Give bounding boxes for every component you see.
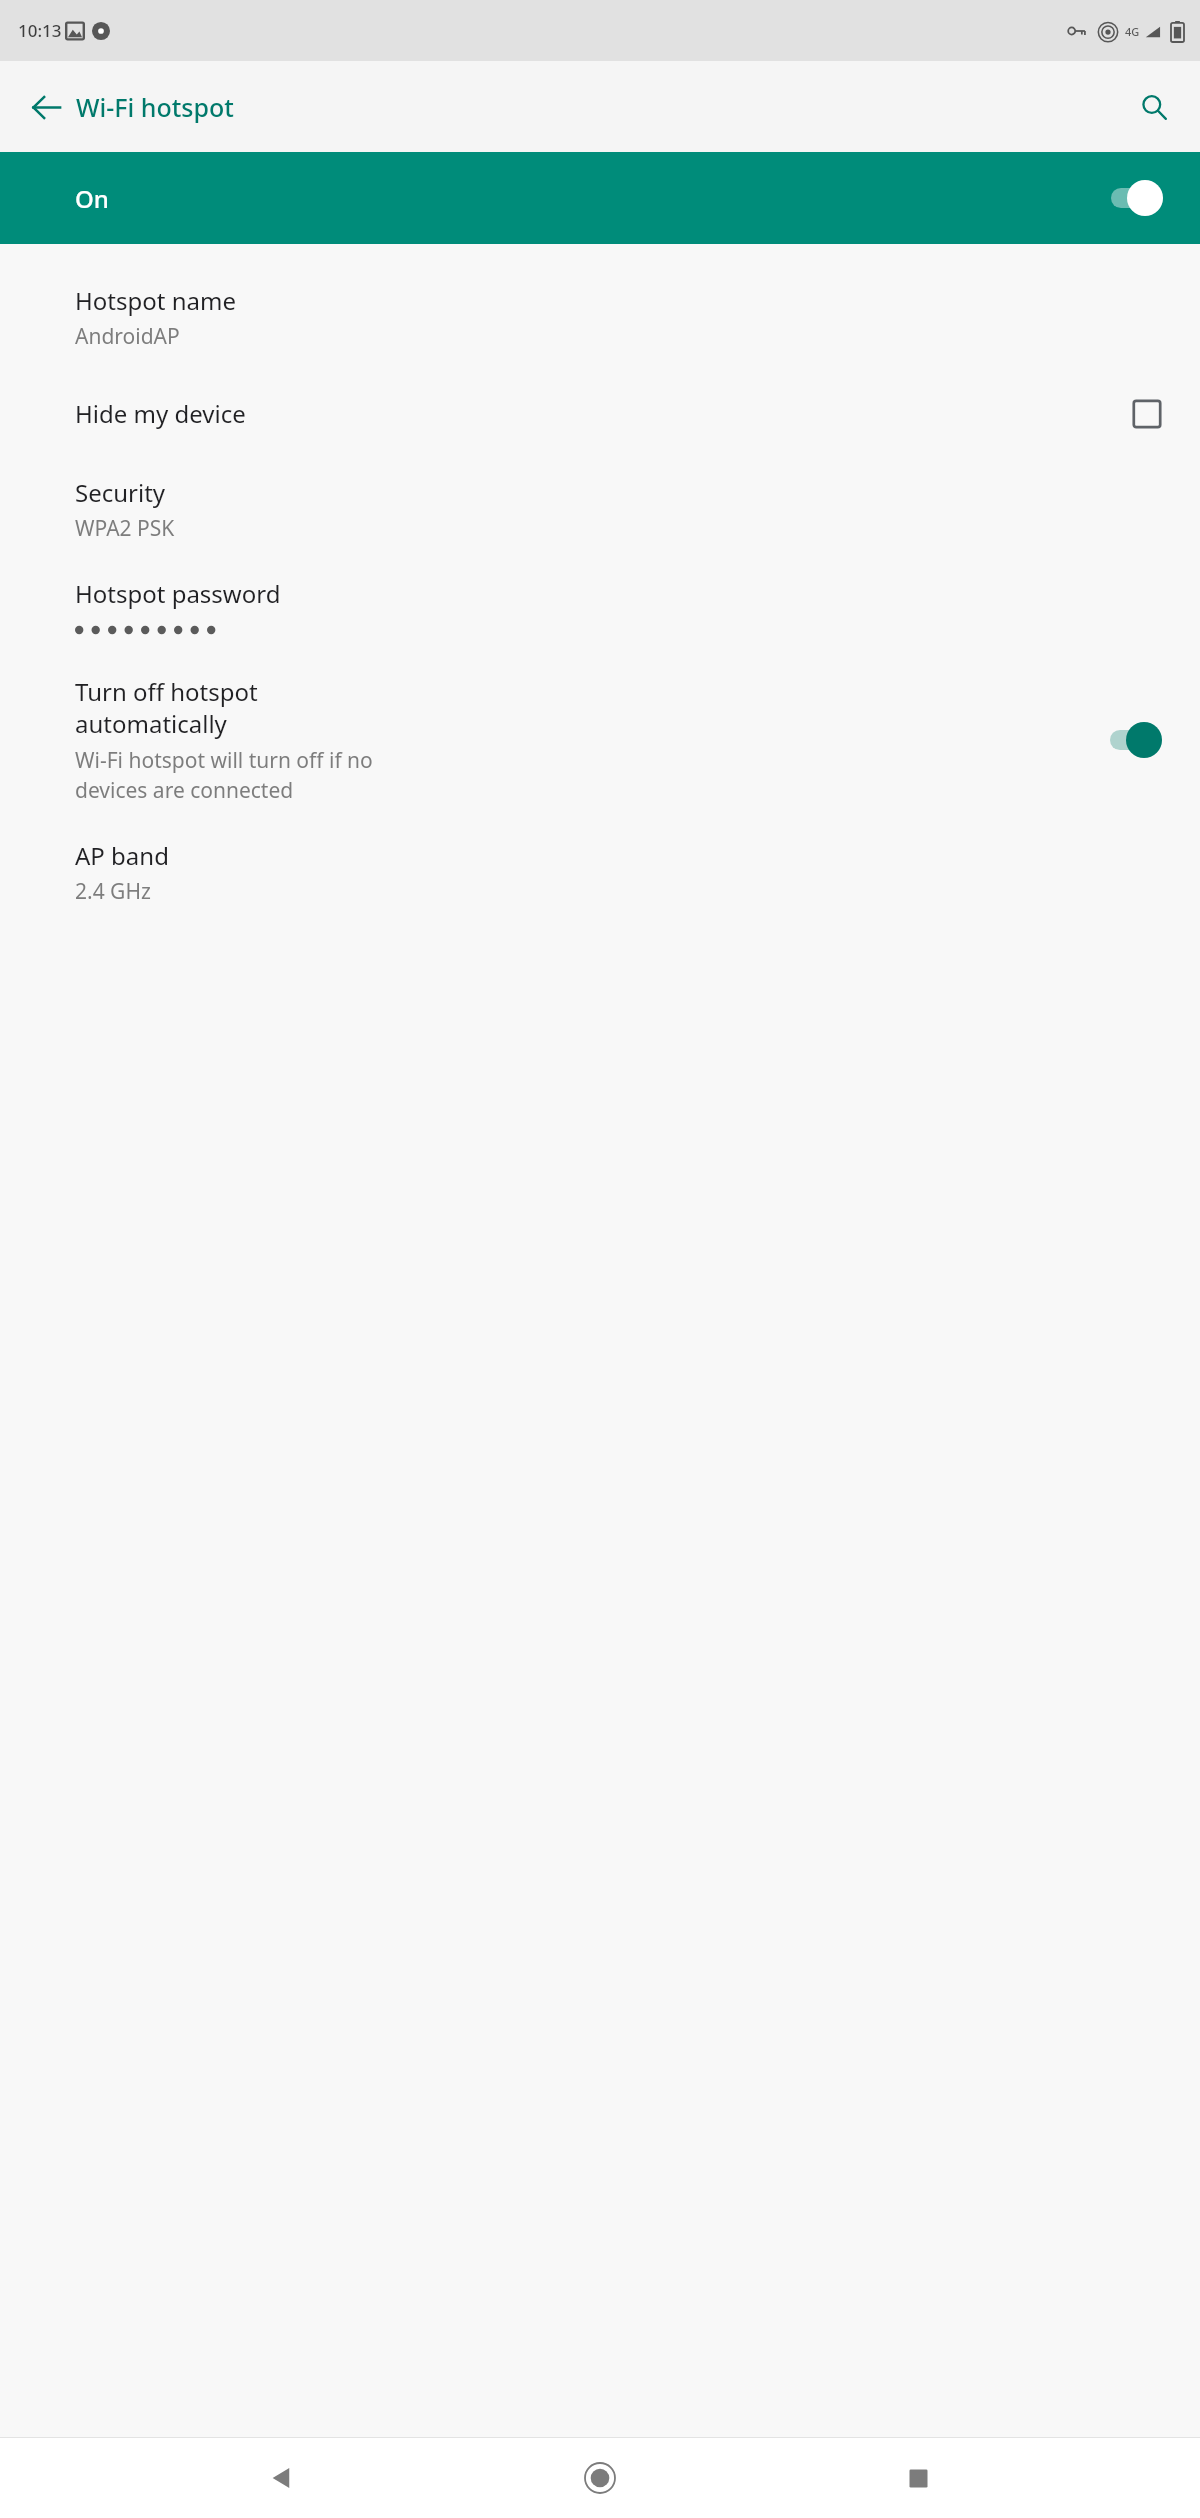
- staticText: Wi-Fi hotspot will turn off if no device…: [75, 746, 373, 804]
- button[interactable]: Back: [20, 81, 72, 133]
- staticText: Wi-Fi hotspot: [76, 90, 234, 124]
- button[interactable]: Search: [1128, 81, 1180, 133]
- staticText: Hotspot password: [75, 577, 281, 610]
- button[interactable]: Hotspot password: [0, 560, 1200, 657]
- button[interactable]: Back: [246, 2442, 318, 2514]
- staticText: AP band: [75, 839, 169, 872]
- button[interactable]: Hotspot name: [0, 267, 1200, 368]
- staticText: Turn off hotspot automatically: [75, 675, 258, 740]
- button[interactable]: Home: [564, 2442, 636, 2514]
- staticText: 10:13: [18, 19, 62, 42]
- staticText: WPA2 PSK: [75, 514, 175, 543]
- button[interactable]: Recents: [882, 2442, 954, 2514]
- staticText: On: [75, 182, 109, 215]
- button[interactable]: On: [0, 152, 1200, 244]
- staticText: Hotspot name: [75, 284, 236, 317]
- staticText: 4G: [1125, 24, 1140, 39]
- button[interactable]: Turn off hotspot automatically: [0, 657, 1200, 822]
- button[interactable]: Hide my device: [0, 368, 1200, 459]
- staticText: 2.4 GHz: [75, 877, 151, 906]
- staticText: Security: [75, 476, 166, 509]
- button[interactable]: Security: [0, 459, 1200, 560]
- staticText: Hide my device: [75, 397, 1132, 430]
- staticText: AndroidAP: [75, 322, 180, 351]
- button[interactable]: AP band: [0, 822, 1200, 923]
